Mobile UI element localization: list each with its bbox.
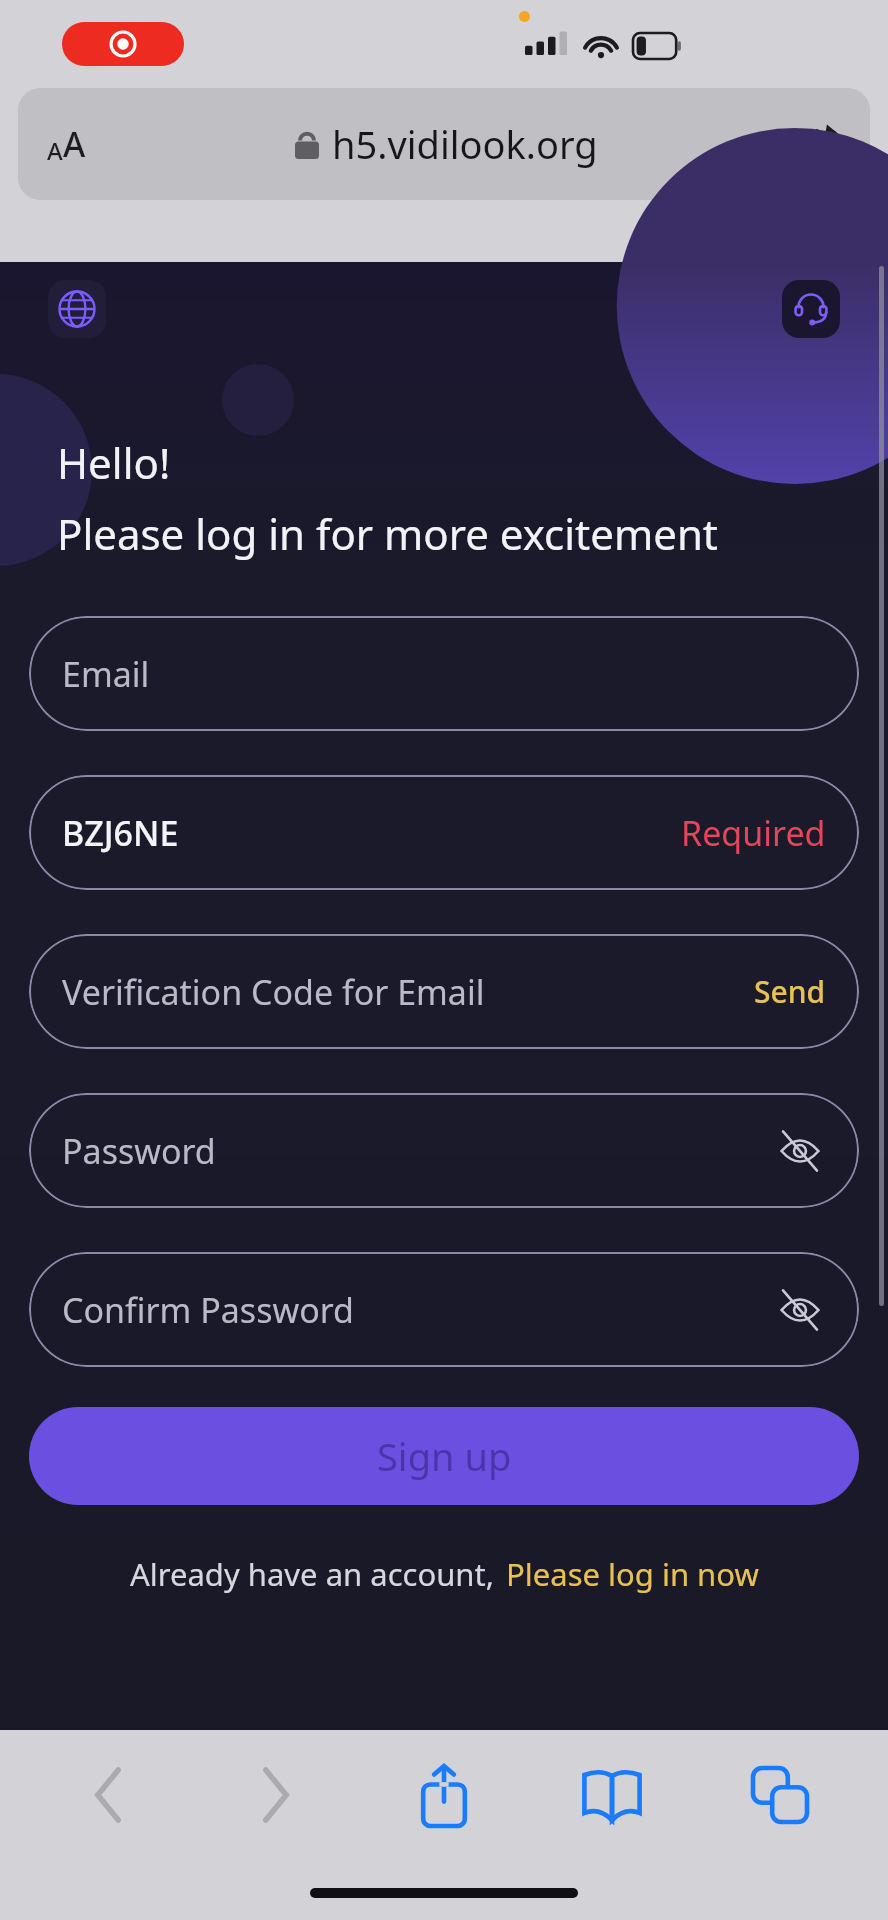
button[interactable]: Support: [782, 280, 840, 338]
staticText: Send: [754, 971, 826, 1012]
button[interactable]: Reload: [778, 88, 870, 200]
button[interactable]: Required: [681, 810, 826, 856]
staticText: Email: [62, 651, 150, 697]
button[interactable]: Show password: [774, 1284, 826, 1336]
button[interactable]: Email: [29, 616, 859, 731]
staticText: Please log in now: [506, 1553, 759, 1595]
staticText: Required: [681, 810, 826, 856]
staticText: Confirm Password: [62, 1287, 354, 1333]
button[interactable]: Confirm Password: [29, 1252, 859, 1367]
staticText: Hello!: [57, 434, 171, 491]
button[interactable]: BZJ6NE: [29, 775, 859, 890]
button[interactable]: Bookmarks: [552, 1736, 672, 1854]
button[interactable]: Forward: [216, 1736, 336, 1854]
button[interactable]: Back: [48, 1736, 168, 1854]
staticText: h5.vidilook.org: [332, 118, 598, 170]
button[interactable]: Page settings: [18, 88, 114, 200]
staticText: Verification Code for Email: [62, 969, 485, 1015]
staticText: Sign up: [377, 1430, 512, 1482]
button[interactable]: Send: [754, 971, 826, 1012]
staticText: Password: [62, 1128, 216, 1174]
button[interactable]: Sign up: [29, 1407, 859, 1505]
staticText: A: [47, 134, 63, 167]
button[interactable]: Show password: [774, 1125, 826, 1177]
staticText: Please log in for more excitement: [57, 505, 718, 562]
button[interactable]: Language: [48, 280, 106, 338]
button[interactable]: Password: [29, 1093, 859, 1208]
staticText: Already have an account,: [130, 1553, 494, 1595]
staticText: BZJ6NE: [62, 810, 179, 856]
button[interactable]: Page settings: [18, 88, 870, 200]
button[interactable]: Verification Code for Email: [29, 934, 859, 1049]
button[interactable]: Tabs: [720, 1736, 840, 1854]
button[interactable]: Share: [384, 1736, 504, 1854]
button[interactable]: Please log in now: [506, 1553, 759, 1595]
staticText: A: [63, 121, 86, 167]
